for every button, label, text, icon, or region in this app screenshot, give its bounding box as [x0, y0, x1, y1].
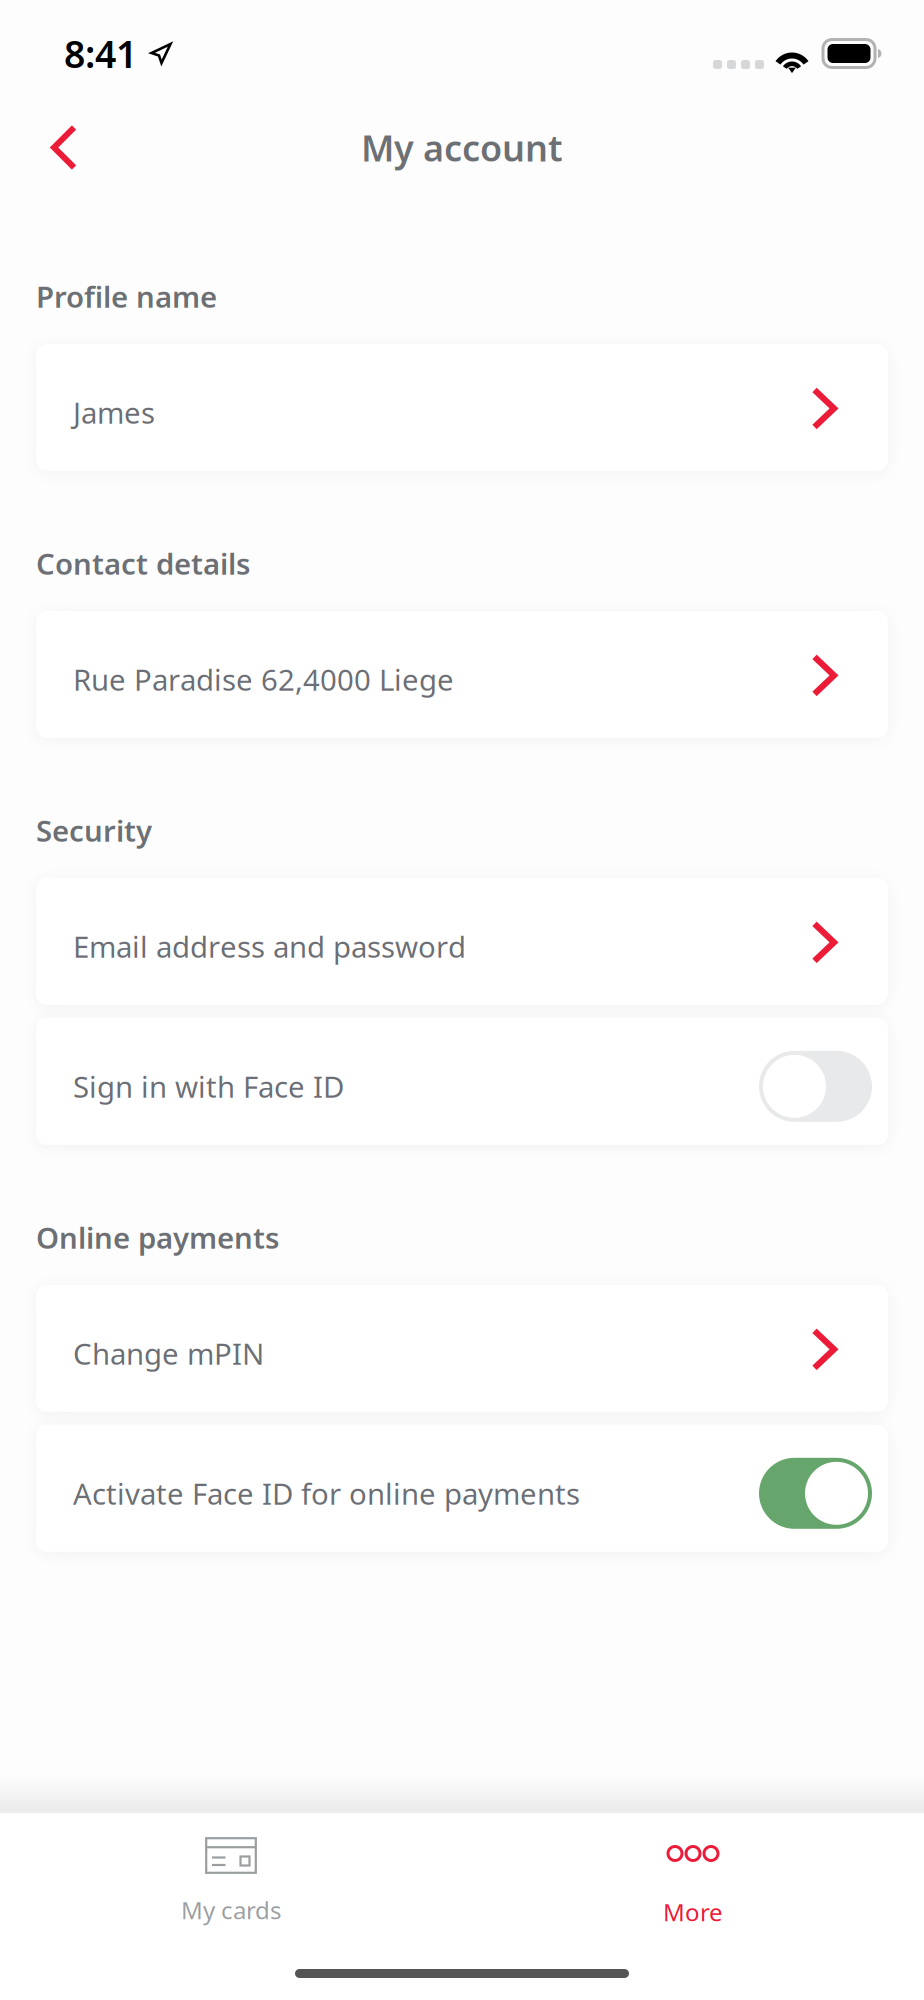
staticText: 8:41 [64, 29, 137, 78]
staticText: Profile name [36, 277, 217, 316]
button[interactable]: Change mPIN [36, 1285, 888, 1412]
staticText: Rue Paradise 62,4000 Liege [73, 660, 454, 699]
button[interactable]: Sign in with Face ID [36, 1018, 888, 1145]
button[interactable]: Rue Paradise 62,4000 Liege [36, 611, 888, 738]
staticText: My account [361, 124, 563, 171]
button[interactable]: James [36, 344, 888, 471]
button[interactable]: Activate Face ID for online payments [36, 1425, 888, 1552]
staticText: My cards [181, 1894, 281, 1926]
staticText: Sign in with Face ID [73, 1067, 344, 1106]
button[interactable]: Back [0, 108, 111, 186]
staticText: Email address and password [73, 927, 466, 966]
staticText: Contact details [36, 544, 250, 583]
staticText: James [73, 393, 155, 432]
staticText: More [663, 1896, 723, 1928]
staticText: Change mPIN [73, 1334, 264, 1373]
button[interactable]: My cards [0, 1837, 462, 1926]
staticText: Activate Face ID for online payments [73, 1474, 580, 1513]
staticText: Online payments [36, 1218, 279, 1257]
button[interactable]: More [462, 1835, 924, 1928]
button[interactable]: Email address and password [36, 878, 888, 1005]
staticText: Security [36, 811, 152, 850]
